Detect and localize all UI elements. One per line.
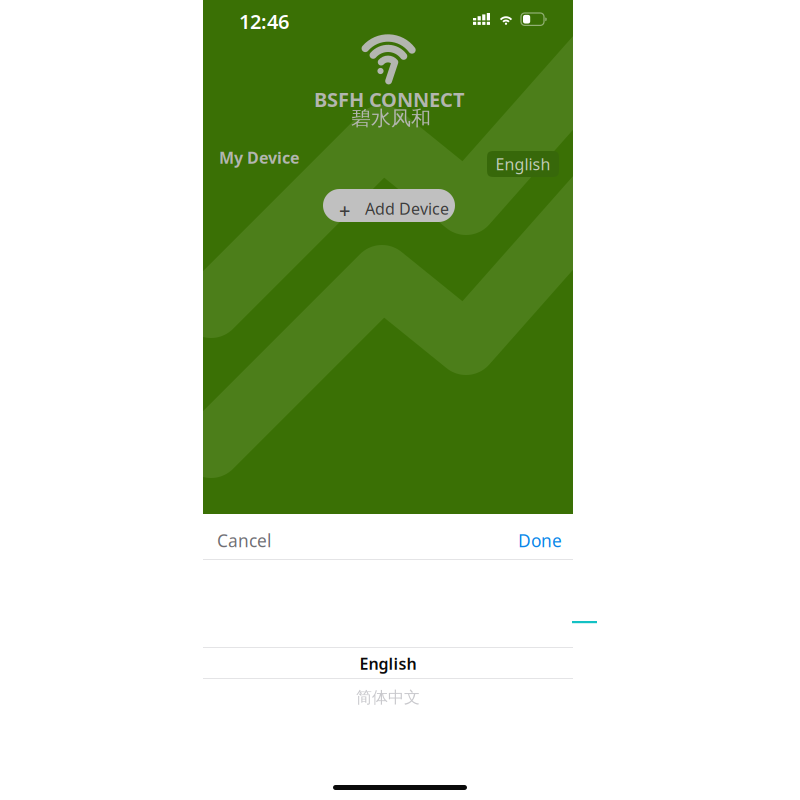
- staticText: +: [339, 197, 350, 224]
- staticText: BSFH CONNECT: [314, 86, 465, 113]
- button[interactable]: English: [487, 151, 559, 177]
- staticText: 12:46: [239, 8, 289, 35]
- button[interactable]: English: [203, 648, 573, 679]
- staticText: 简体中文: [356, 688, 420, 707]
- button[interactable]: 简体中文: [203, 682, 573, 713]
- button[interactable]: +: [323, 189, 455, 222]
- button[interactable]: Done: [510, 519, 570, 562]
- button[interactable]: Cancel: [209, 519, 279, 562]
- staticText: Add Device: [365, 198, 449, 219]
- staticText: My Device: [219, 147, 300, 168]
- staticText: Cancel: [217, 529, 271, 552]
- staticText: Done: [518, 529, 562, 552]
- staticText: English: [495, 153, 550, 175]
- staticText: 碧水风和: [351, 106, 431, 131]
- staticText: English: [359, 653, 416, 674]
